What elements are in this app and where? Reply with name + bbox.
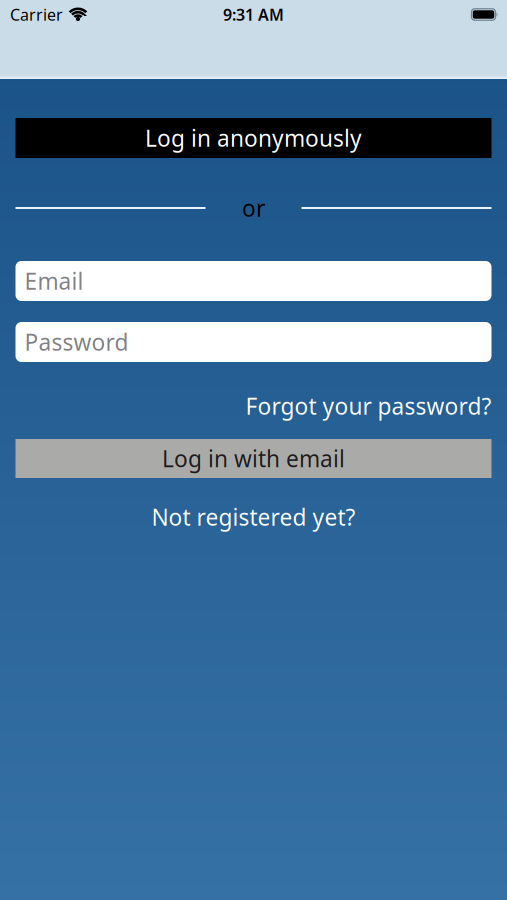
staticText: Log in with email [162, 443, 345, 473]
staticText: 9:31 AM [223, 4, 284, 25]
staticText: Not registered yet? [151, 502, 355, 532]
staticText: Log in anonymously [145, 123, 362, 153]
staticText: Carrier [10, 4, 63, 25]
staticText: or [242, 193, 265, 223]
staticText: Password [24, 327, 128, 357]
staticText: Email [24, 266, 83, 296]
staticText: Forgot your password? [245, 391, 491, 421]
